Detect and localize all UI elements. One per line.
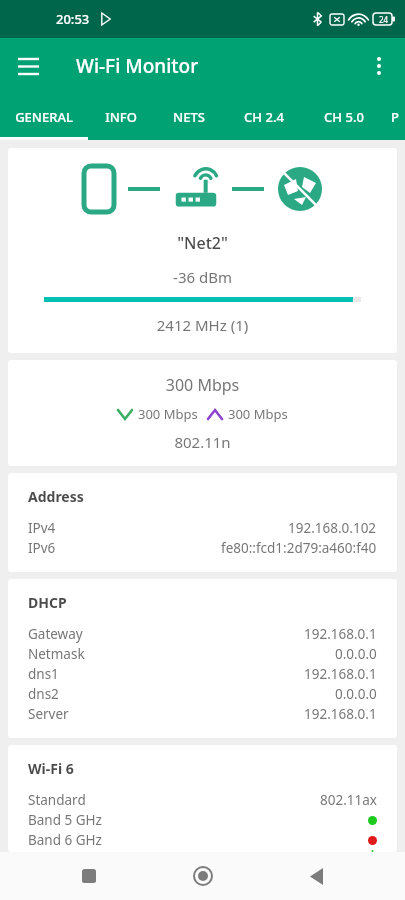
staticText: Wi-Fi 6 bbox=[28, 759, 74, 778]
button[interactable]: Back bbox=[292, 852, 340, 900]
staticText: Address bbox=[28, 487, 84, 506]
staticText: 192.168.0.102 bbox=[288, 519, 377, 537]
staticText: fe80::fcd1:2d79:a460:f40 bbox=[221, 539, 377, 557]
staticText: 300 Mbps bbox=[8, 374, 397, 396]
button[interactable]: "Net2" bbox=[8, 148, 397, 353]
staticText: CH 2.4 bbox=[244, 108, 284, 126]
staticText: CH 5.0 bbox=[324, 108, 364, 126]
button[interactable]: GENERAL bbox=[0, 94, 88, 140]
staticText: Server bbox=[28, 705, 69, 723]
staticText: INFO bbox=[105, 108, 137, 126]
staticText: GENERAL bbox=[15, 108, 73, 126]
staticText: -36 dBm bbox=[8, 267, 397, 287]
staticText: 192.168.0.1 bbox=[304, 705, 377, 723]
button[interactable]: Address bbox=[8, 473, 397, 572]
button[interactable]: NETS bbox=[154, 94, 224, 140]
button[interactable]: Home bbox=[179, 852, 227, 900]
staticText: IPv4 bbox=[28, 519, 56, 537]
staticText: 24 bbox=[379, 14, 389, 25]
staticText: "Net2" bbox=[8, 232, 397, 254]
button[interactable]: INFO bbox=[88, 94, 154, 140]
button[interactable]: Menu bbox=[8, 46, 48, 86]
staticText: DHCP bbox=[28, 593, 67, 612]
staticText: Standard bbox=[28, 791, 86, 809]
staticText: 0.0.0.0 bbox=[335, 685, 377, 703]
staticText: 0.0.0.0 bbox=[335, 645, 377, 663]
button[interactable]: More options bbox=[357, 44, 401, 88]
staticText: 802.11ax bbox=[320, 791, 377, 809]
staticText: 300 Mbps bbox=[228, 405, 288, 423]
staticText: 192.168.0.1 bbox=[304, 665, 377, 683]
staticText: 802.11n bbox=[8, 432, 397, 452]
button[interactable]: 300 Mbps bbox=[8, 360, 397, 466]
staticText: dns2 bbox=[28, 685, 59, 703]
staticText: 300 Mbps bbox=[138, 405, 198, 423]
button[interactable]: P bbox=[384, 94, 405, 140]
staticText: P bbox=[391, 108, 399, 126]
staticText: IPv6 bbox=[28, 539, 56, 557]
button[interactable]: Wi-Fi 6 bbox=[8, 745, 397, 852]
button[interactable]: CH 5.0 bbox=[304, 94, 384, 140]
button[interactable]: Recents bbox=[65, 852, 113, 900]
staticText: Band 6 GHz bbox=[28, 831, 102, 849]
staticText: 192.168.0.1 bbox=[304, 625, 377, 643]
staticText: Netmask bbox=[28, 645, 85, 663]
button[interactable]: DHCP bbox=[8, 579, 397, 738]
staticText: 2412 MHz (1) bbox=[8, 315, 397, 335]
staticText: 20:53 bbox=[56, 10, 90, 28]
button[interactable]: CH 2.4 bbox=[224, 94, 304, 140]
staticText: dns1 bbox=[28, 665, 59, 683]
staticText: NETS bbox=[173, 108, 205, 126]
staticText: Wi-Fi Monitor bbox=[76, 53, 199, 79]
staticText: Band 5 GHz bbox=[28, 811, 102, 829]
staticText: Gateway bbox=[28, 625, 83, 643]
